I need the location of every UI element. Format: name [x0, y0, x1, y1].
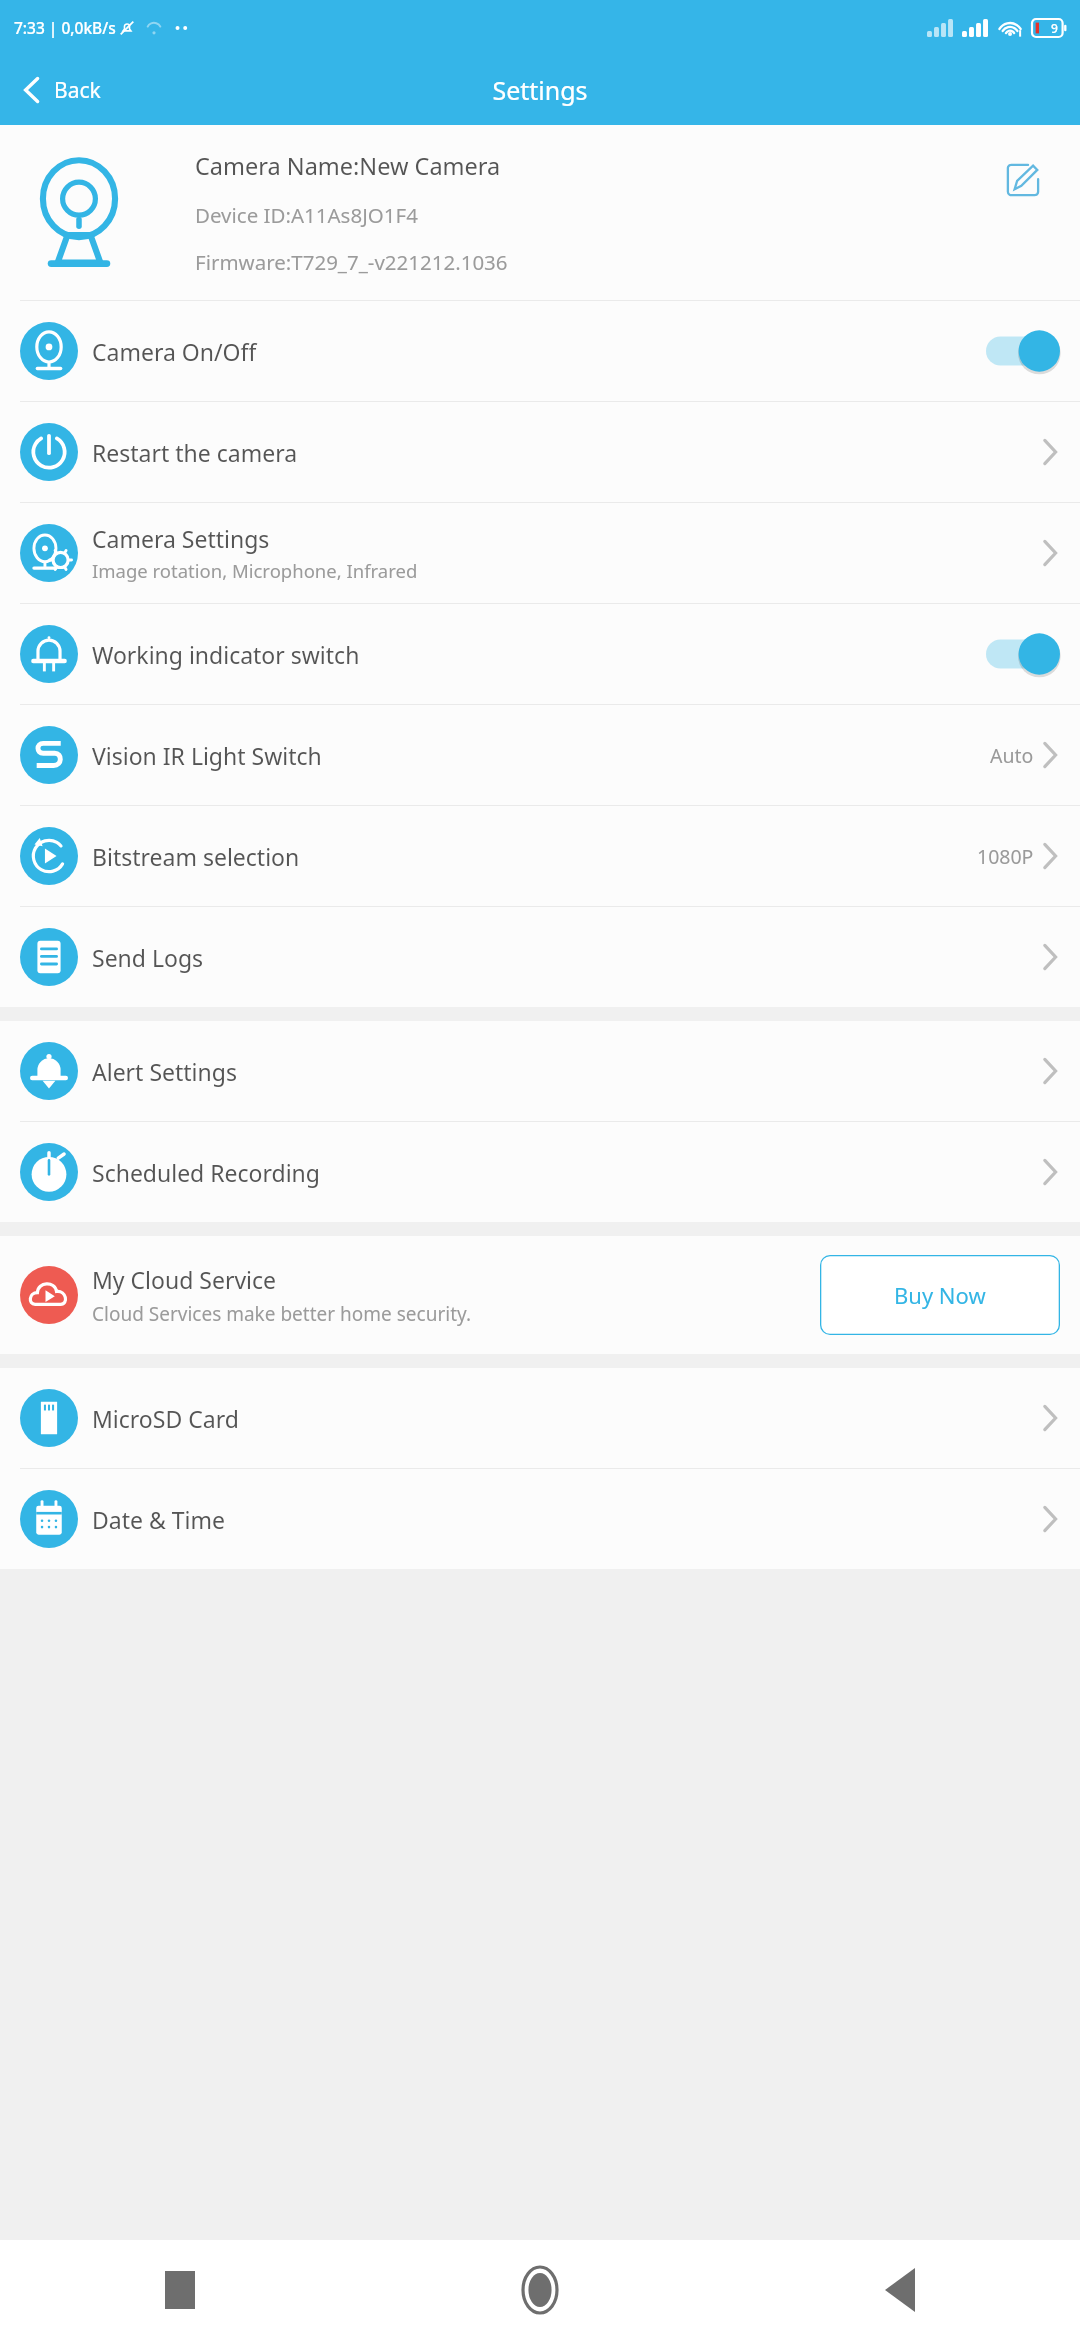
staticText: Device ID:A11As8JO1F4: [195, 201, 418, 229]
button[interactable]: [986, 329, 1060, 373]
staticText: 1080P: [977, 843, 1034, 870]
button[interactable]: Edit camera name: [996, 153, 1050, 207]
staticText: Date & Time: [92, 1504, 225, 1535]
button[interactable]: Back: [0, 64, 119, 116]
button[interactable]: Send Logs: [0, 907, 1080, 1007]
staticText: 7:33 | 0,0kB/s: [14, 17, 116, 38]
staticText: Cloud Services make better home security…: [92, 1301, 472, 1327]
staticText: Camera Name:New Camera: [195, 150, 501, 182]
staticText: Firmware:T729_7_-v221212.1036: [195, 248, 508, 276]
button[interactable]: MicroSD Card: [0, 1368, 1080, 1468]
button[interactable]: Date & Time: [0, 1469, 1080, 1569]
button[interactable]: Recent apps: [143, 2249, 217, 2331]
staticText: Vision IR Light Switch: [92, 740, 322, 771]
staticText: My Cloud Service: [92, 1264, 277, 1295]
button[interactable]: My Cloud Service: [0, 1236, 1080, 1354]
staticText: Auto: [990, 742, 1034, 769]
button[interactable]: Working indicator switch: [0, 604, 1080, 704]
button[interactable]: Camera On/Off: [0, 301, 1080, 401]
staticText: Scheduled Recording: [92, 1157, 320, 1188]
staticText: Bitstream selection: [92, 841, 300, 872]
button[interactable]: [986, 632, 1060, 676]
button[interactable]: Vision IR Light Switch: [0, 705, 1080, 805]
button[interactable]: Home: [503, 2247, 577, 2333]
staticText: Settings: [0, 73, 1080, 107]
button[interactable]: Alert Settings: [0, 1021, 1080, 1121]
staticText: Camera Settings: [92, 523, 270, 554]
button[interactable]: Restart the camera: [0, 402, 1080, 502]
staticText: Working indicator switch: [92, 639, 360, 670]
button[interactable]: Scheduled Recording: [0, 1122, 1080, 1222]
staticText: MicroSD Card: [92, 1403, 239, 1434]
staticText: Image rotation, Microphone, Infrared: [92, 558, 418, 583]
staticText: Send Logs: [92, 942, 204, 973]
staticText: Camera On/Off: [92, 336, 257, 367]
button[interactable]: Buy Now: [820, 1255, 1060, 1335]
staticText: Back: [54, 76, 101, 105]
button[interactable]: Bitstream selection: [0, 806, 1080, 906]
button[interactable]: Camera Settings: [0, 503, 1080, 603]
staticText: Restart the camera: [92, 437, 298, 468]
staticText: 9: [1051, 20, 1058, 36]
button[interactable]: Back: [863, 2246, 937, 2334]
staticText: Buy Now: [894, 1280, 986, 1310]
staticText: Alert Settings: [92, 1056, 237, 1087]
